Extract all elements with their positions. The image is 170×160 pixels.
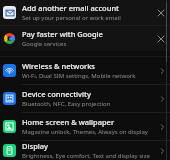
staticText: Home screen & wallpaper	[22, 117, 115, 127]
staticText: Add another email account	[22, 3, 119, 13]
staticText: Set up your personal or work email	[22, 14, 121, 22]
button[interactable]: Pay faster with Google	[0, 26, 170, 51]
button[interactable]: Display	[0, 141, 170, 160]
staticText: Brightness, Eye comfort, Text and displa…	[22, 152, 150, 160]
button[interactable]: Add another email account	[0, 0, 170, 25]
staticText: Wi-Fi, Dual SIM settings, Mobile network	[22, 72, 136, 80]
button[interactable]: Device connectivity	[0, 85, 170, 112]
button[interactable]: Dismiss	[154, 6, 168, 20]
staticText: Google services	[22, 40, 67, 48]
button[interactable]: Home screen & wallpaper	[0, 113, 170, 140]
staticText: Magazine unlock, Themes, Always on displ…	[22, 128, 148, 136]
staticText: Pay faster with Google	[22, 29, 103, 39]
button[interactable]: Dismiss	[154, 32, 168, 46]
staticText: Wireless & networks	[22, 61, 95, 71]
staticText: Bluetooth, NFC, Easy projection	[22, 100, 111, 108]
staticText: Display	[22, 141, 49, 151]
staticText: Device connectivity	[22, 89, 91, 99]
button[interactable]: Wireless & networks	[0, 57, 170, 84]
